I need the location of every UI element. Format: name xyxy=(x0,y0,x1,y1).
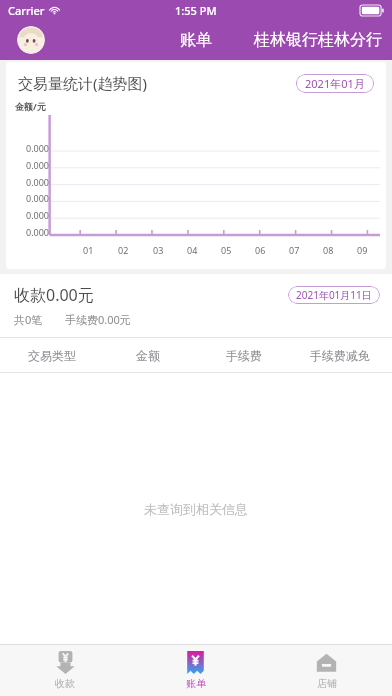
staticText: 06 xyxy=(255,244,266,256)
staticText: 07 xyxy=(289,244,300,256)
button[interactable]: 桂林银行桂林分行 xyxy=(254,30,382,50)
button[interactable]: 2021年01月11日 xyxy=(288,286,380,304)
staticText: 未查询到相关信息 xyxy=(144,501,248,517)
staticText: 0.000 xyxy=(26,192,50,204)
button[interactable]: Profile avatar xyxy=(17,26,45,54)
staticText: 金额 xyxy=(136,348,160,363)
staticText: 共0笔 xyxy=(14,312,43,327)
button[interactable]: 收款 xyxy=(0,645,130,696)
staticText: 0.000 xyxy=(26,176,50,188)
staticText: 金额/元 xyxy=(15,100,46,112)
staticText: 交易量统计(趋势图) xyxy=(18,73,148,93)
button[interactable]: 2021年01月 xyxy=(296,74,374,93)
staticText: 手续费 xyxy=(226,348,262,363)
staticText: 交易类型 xyxy=(28,348,76,363)
staticText: 0.000 xyxy=(26,159,50,171)
staticText: 01 xyxy=(83,244,94,256)
staticText: 2021年01月 xyxy=(305,76,365,91)
staticText: 09 xyxy=(357,244,368,256)
staticText: 账单 xyxy=(180,30,212,50)
staticText: 03 xyxy=(153,244,164,256)
staticText: 账单 xyxy=(186,677,206,690)
staticText: 0.000 xyxy=(26,142,50,154)
staticText: 1:55 PM xyxy=(175,3,217,18)
staticText: 0.000 xyxy=(26,226,50,238)
staticText: 店铺 xyxy=(317,677,337,690)
staticText: 02 xyxy=(118,244,129,256)
staticText: 04 xyxy=(187,244,198,256)
staticText: 0.000 xyxy=(26,209,50,221)
staticText: 2021年01月11日 xyxy=(296,288,372,302)
staticText: 手续费0.00元 xyxy=(65,312,131,327)
button[interactable]: 店铺 xyxy=(261,645,392,696)
staticText: 收款 xyxy=(55,677,75,690)
staticText: 手续费减免 xyxy=(310,348,370,363)
button[interactable]: 账单 xyxy=(130,645,261,696)
staticText: 收款0.00元 xyxy=(14,284,94,306)
staticText: Carrier xyxy=(8,3,45,18)
staticText: 05 xyxy=(221,244,232,256)
staticText: 08 xyxy=(323,244,334,256)
